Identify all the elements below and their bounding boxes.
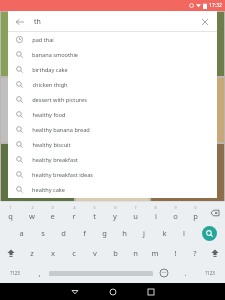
button[interactable]: banana smoothie xyxy=(8,47,217,62)
button[interactable]: Home xyxy=(98,283,128,300)
staticText: p xyxy=(193,211,198,221)
staticText: ?123 xyxy=(10,270,20,276)
button[interactable]: 0 xyxy=(185,202,205,223)
staticText: chicken thigh xyxy=(32,81,68,89)
staticText: e xyxy=(50,211,55,221)
button[interactable]: birthday cake xyxy=(8,62,217,77)
staticText: healthy breakfast xyxy=(32,156,78,164)
button[interactable]: z xyxy=(21,243,42,263)
button[interactable]: 3 xyxy=(42,202,63,223)
button[interactable]: l xyxy=(174,223,194,243)
staticText: n xyxy=(133,248,138,258)
staticText: dessert with pictures xyxy=(32,96,87,104)
button[interactable]: x xyxy=(42,243,63,263)
button[interactable]: ?123 xyxy=(195,263,225,283)
staticText: l xyxy=(183,228,185,238)
staticText: x xyxy=(51,248,55,258)
staticText: t xyxy=(93,211,96,221)
staticText: r xyxy=(72,211,76,221)
staticText: 6 xyxy=(114,205,117,210)
button[interactable]: healthy banana bread xyxy=(8,122,217,137)
button[interactable]: Search xyxy=(194,223,225,243)
button[interactable]: Space xyxy=(49,267,153,279)
button[interactable]: 5 xyxy=(84,202,105,223)
button[interactable]: s xyxy=(32,223,53,243)
button[interactable]: 4 xyxy=(63,202,84,223)
button[interactable]: 2 xyxy=(21,202,42,223)
button[interactable]: chicken thigh xyxy=(8,77,217,92)
button[interactable]: 6 xyxy=(105,202,125,223)
staticText: o xyxy=(173,211,178,221)
button[interactable]: dessert with pictures xyxy=(8,92,217,107)
button[interactable]: ! xyxy=(165,243,185,263)
staticText: 9 xyxy=(174,205,177,210)
button[interactable]: pad thai xyxy=(8,32,217,47)
button[interactable]: Back xyxy=(60,283,90,300)
staticText: 4 xyxy=(73,205,76,210)
button[interactable]: ?123 xyxy=(0,263,29,283)
button[interactable]: Recents xyxy=(136,283,166,300)
button[interactable]: f xyxy=(74,223,94,243)
button[interactable]: Backspace xyxy=(205,202,225,223)
button[interactable]: healthy breakfast xyxy=(8,152,217,167)
button[interactable]: k xyxy=(154,223,174,243)
button[interactable]: 9 xyxy=(165,202,185,223)
staticText: w xyxy=(29,211,35,221)
button[interactable]: g xyxy=(94,223,114,243)
staticText: healthy biscuit xyxy=(32,141,71,149)
staticText: 2 xyxy=(31,205,34,210)
button[interactable]: Shift xyxy=(0,243,21,263)
staticText: j xyxy=(143,228,145,238)
staticText: 7 xyxy=(134,205,137,210)
button[interactable]: . xyxy=(175,263,195,283)
staticText: ?123 xyxy=(205,270,215,276)
button[interactable]: Emoji xyxy=(153,263,175,283)
staticText: 0 xyxy=(194,205,197,210)
button[interactable]: healthy breakfast ideas xyxy=(8,167,217,182)
button[interactable]: a xyxy=(11,223,32,243)
staticText: b xyxy=(113,248,118,258)
button[interactable]: , xyxy=(29,263,49,283)
button[interactable]: Shift xyxy=(205,243,225,263)
button[interactable]: Back xyxy=(13,15,27,29)
staticText: m xyxy=(151,248,159,258)
button[interactable]: 8 xyxy=(145,202,165,223)
button[interactable]: n xyxy=(125,243,145,263)
button[interactable]: d xyxy=(53,223,74,243)
staticText: ? xyxy=(193,248,197,258)
button[interactable]: 1 xyxy=(0,202,21,223)
staticText: d xyxy=(61,228,66,238)
staticText: . xyxy=(184,268,187,278)
staticText: i xyxy=(155,211,157,221)
button[interactable]: c xyxy=(63,243,84,263)
staticText: k xyxy=(162,228,167,238)
staticText: h xyxy=(122,228,127,238)
button[interactable]: ? xyxy=(185,243,205,263)
staticText: birthday cake xyxy=(32,66,68,74)
staticText: c xyxy=(72,248,76,258)
staticText: s xyxy=(41,228,45,238)
button[interactable]: v xyxy=(84,243,105,263)
button[interactable]: m xyxy=(145,243,165,263)
button[interactable]: 7 xyxy=(125,202,145,223)
staticText: 3 xyxy=(51,205,54,210)
button[interactable]: b xyxy=(105,243,125,263)
staticText: y xyxy=(113,211,117,221)
staticText: healthy food xyxy=(32,111,66,119)
staticText: 8 xyxy=(154,205,157,210)
button[interactable]: j xyxy=(134,223,154,243)
button[interactable]: healthy food xyxy=(8,107,217,122)
staticText: pad thai xyxy=(32,36,54,44)
button[interactable]: healthy cake xyxy=(8,182,217,197)
button[interactable]: healthy biscuit xyxy=(8,137,217,152)
staticText: q xyxy=(8,211,13,221)
staticText: healthy breakfast ideas xyxy=(32,171,93,179)
staticText: healthy banana bread xyxy=(32,126,90,134)
staticText: v xyxy=(93,248,97,258)
button[interactable]: h xyxy=(114,223,134,243)
staticText: g xyxy=(102,228,107,238)
button[interactable]: Back xyxy=(8,11,217,32)
staticText: u xyxy=(133,211,138,221)
button[interactable]: Clear query xyxy=(198,15,212,29)
staticText: a xyxy=(19,228,24,238)
